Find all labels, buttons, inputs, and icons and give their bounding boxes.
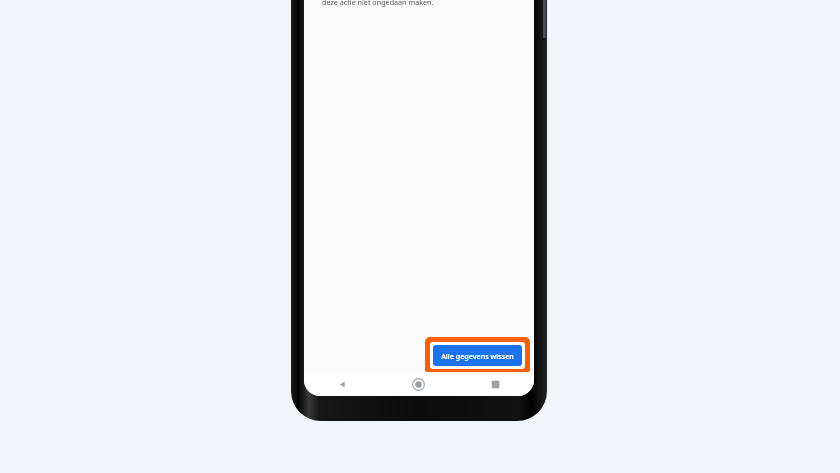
button[interactable]: Alle gegevens wissen	[433, 345, 522, 366]
button[interactable]: Alle gegevens wissen	[425, 337, 530, 374]
button[interactable]: Recent apps	[457, 372, 534, 396]
button[interactable]: Back	[304, 372, 380, 396]
staticText: Je staat op het punt om alle gegevens te…	[322, 0, 518, 7]
staticText: Alle gegevens wissen	[441, 351, 514, 361]
button[interactable]: Home	[380, 372, 457, 396]
